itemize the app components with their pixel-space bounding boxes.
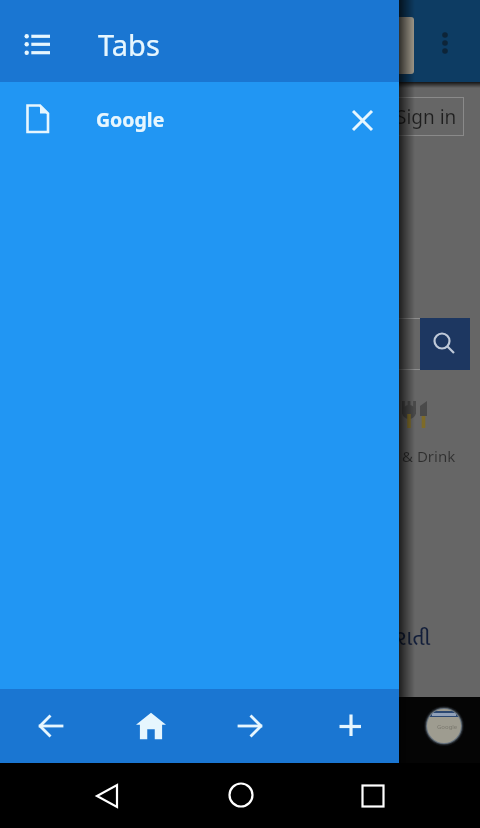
staticText: Google <box>437 723 458 731</box>
staticText: Sign in <box>396 104 457 130</box>
button[interactable]: Home <box>228 782 254 808</box>
button[interactable]: Recents <box>361 783 387 809</box>
staticText: & Drink <box>402 446 456 466</box>
other: Tab list <box>24 30 50 56</box>
button[interactable]: Google <box>0 82 399 157</box>
button[interactable]: Close tab <box>333 91 391 149</box>
staticText: Tabs <box>98 25 160 64</box>
button[interactable]: Tab list <box>0 0 399 82</box>
button[interactable]: Forward <box>199 689 299 763</box>
button[interactable]: Search <box>420 318 470 370</box>
button[interactable]: Back <box>0 689 99 763</box>
staticText: Google <box>96 106 165 133</box>
button[interactable]: New tab <box>299 689 399 763</box>
staticText: રાતી <box>396 621 431 656</box>
button[interactable]: Sign in <box>392 97 464 136</box>
button[interactable]: Home <box>99 689 199 763</box>
button[interactable]: Back <box>94 783 120 809</box>
